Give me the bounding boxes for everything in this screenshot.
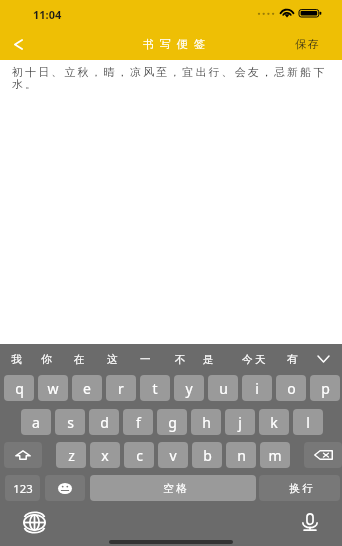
button[interactable]: Shift: [4, 442, 42, 468]
button[interactable]: p: [310, 375, 340, 401]
button[interactable]: n: [226, 442, 256, 468]
staticText: 123: [13, 481, 33, 496]
button[interactable]: o: [276, 375, 306, 401]
button[interactable]: x: [90, 442, 120, 468]
button[interactable]: 在: [67, 344, 93, 374]
staticText: o: [287, 379, 296, 398]
button[interactable]: u: [208, 375, 238, 401]
staticText: 11:04: [33, 7, 62, 22]
staticText: t: [152, 379, 158, 398]
button[interactable]: 123: [5, 475, 40, 501]
button[interactable]: d: [89, 409, 119, 435]
button[interactable]: 一: [133, 344, 159, 374]
button[interactable]: z: [56, 442, 86, 468]
button[interactable]: 空格: [90, 475, 256, 501]
staticText: f: [136, 413, 141, 432]
staticText: 空格: [162, 482, 188, 495]
button[interactable]: e: [72, 375, 102, 401]
button[interactable]: b: [192, 442, 222, 468]
button[interactable]: j: [225, 409, 255, 435]
button[interactable]: Voice input: [296, 510, 324, 534]
button[interactable]: 这: [100, 344, 126, 374]
staticText: h: [202, 413, 211, 432]
button[interactable]: Collapse suggestions: [310, 344, 336, 374]
staticText: u: [219, 379, 228, 398]
staticText: b: [203, 446, 212, 465]
staticText: y: [185, 379, 193, 398]
staticText: i: [255, 379, 259, 398]
button[interactable]: r: [106, 375, 136, 401]
button[interactable]: Emoji: [45, 475, 85, 501]
button[interactable]: 有: [280, 344, 306, 374]
button[interactable]: a: [21, 409, 51, 435]
staticText: 初十日、立秋，晴，凉风至，宜出行、会友，忌新船下水。: [12, 65, 336, 91]
staticText: 不: [175, 353, 188, 366]
staticText: c: [136, 446, 143, 465]
staticText: j: [238, 413, 242, 432]
staticText: e: [83, 379, 91, 398]
button[interactable]: c: [124, 442, 154, 468]
button[interactable]: l: [293, 409, 323, 435]
button[interactable]: 保存: [282, 28, 342, 60]
button[interactable]: v: [158, 442, 188, 468]
staticText: l: [306, 413, 310, 432]
staticText: 有: [287, 353, 300, 366]
staticText: s: [67, 413, 74, 432]
button[interactable]: 我: [4, 344, 30, 374]
staticText: q: [15, 379, 24, 398]
staticText: 我: [11, 353, 24, 366]
staticText: p: [321, 379, 330, 398]
staticText: w: [47, 379, 59, 398]
button[interactable]: 不: [168, 344, 194, 374]
button[interactable]: 今天: [240, 344, 270, 374]
staticText: 书写便签: [140, 37, 208, 51]
button[interactable]: m: [260, 442, 290, 468]
button[interactable]: Switch language: [20, 510, 48, 534]
staticText: 你: [41, 353, 54, 366]
staticText: d: [100, 413, 109, 432]
button[interactable]: k: [259, 409, 289, 435]
staticText: 今天: [242, 353, 268, 366]
button[interactable]: q: [4, 375, 34, 401]
staticText: 这: [107, 353, 120, 366]
staticText: a: [32, 413, 40, 432]
button[interactable]: Backspace: [304, 442, 342, 468]
button[interactable]: h: [191, 409, 221, 435]
button[interactable]: f: [123, 409, 153, 435]
button[interactable]: i: [242, 375, 272, 401]
staticText: z: [68, 446, 75, 465]
staticText: k: [270, 413, 278, 432]
staticText: n: [237, 446, 246, 465]
button[interactable]: t: [140, 375, 170, 401]
staticText: 是: [203, 353, 216, 366]
button[interactable]: s: [55, 409, 85, 435]
button[interactable]: 是: [196, 344, 222, 374]
button[interactable]: 换行: [259, 475, 340, 501]
button[interactable]: 你: [34, 344, 60, 374]
staticText: v: [169, 446, 177, 465]
staticText: 保存: [294, 37, 320, 51]
staticText: 在: [74, 353, 87, 366]
staticText: m: [268, 446, 282, 465]
staticText: x: [101, 446, 109, 465]
button[interactable]: y: [174, 375, 204, 401]
staticText: g: [168, 413, 177, 432]
button[interactable]: w: [38, 375, 68, 401]
staticText: 一: [140, 353, 153, 366]
button[interactable]: Back: [0, 28, 36, 60]
staticText: r: [118, 379, 124, 398]
staticText: 换行: [288, 482, 314, 495]
button[interactable]: g: [157, 409, 187, 435]
